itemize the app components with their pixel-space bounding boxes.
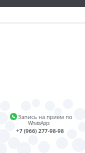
other: WhatsApp [10, 113, 17, 120]
button[interactable]: WhatsApp [0, 110, 85, 118]
staticText: WhatsApp: [28, 119, 50, 126]
staticText: Запись на прием по [18, 113, 73, 121]
staticText: +7 (966) 277-98-98 [16, 127, 64, 134]
